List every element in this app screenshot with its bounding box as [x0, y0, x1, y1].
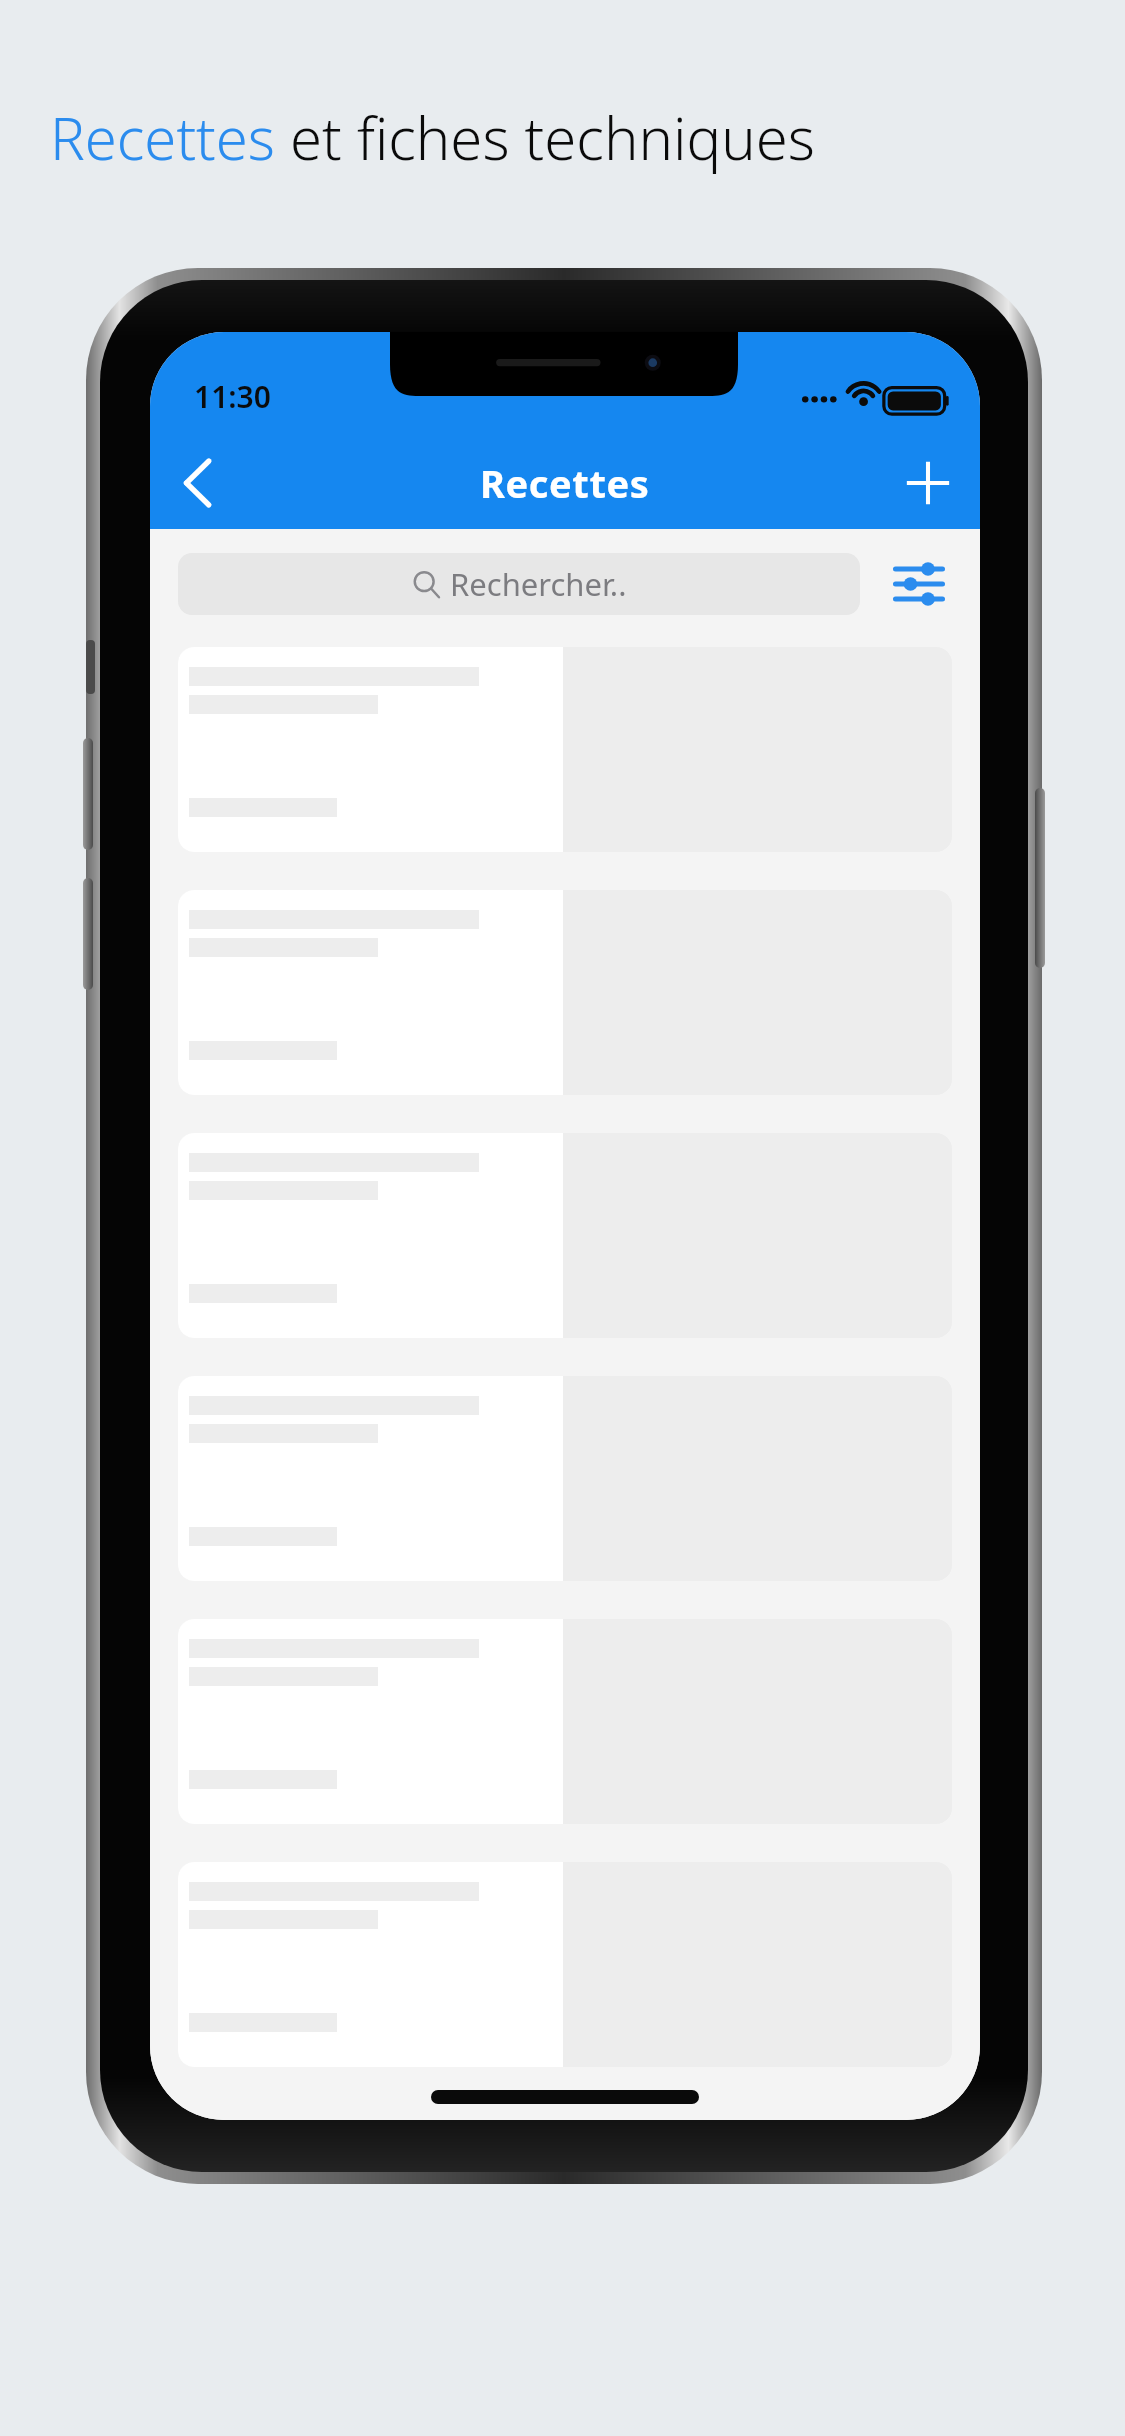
staticText: Recettes et fiches techniques: [50, 98, 815, 177]
button[interactable]: [178, 1376, 952, 1581]
button[interactable]: Back: [158, 443, 238, 523]
button[interactable]: [178, 1862, 952, 2067]
button[interactable]: [178, 647, 952, 852]
button[interactable]: [178, 1619, 952, 1824]
button[interactable]: Add recipe: [888, 443, 968, 523]
staticText: Rechercher..: [450, 563, 627, 605]
button[interactable]: [178, 890, 952, 1095]
button[interactable]: Rechercher..: [178, 553, 860, 615]
button[interactable]: Filters: [886, 551, 952, 617]
staticText: Recettes: [480, 457, 650, 509]
button[interactable]: [178, 1133, 952, 1338]
staticText: 11:30: [194, 376, 271, 417]
